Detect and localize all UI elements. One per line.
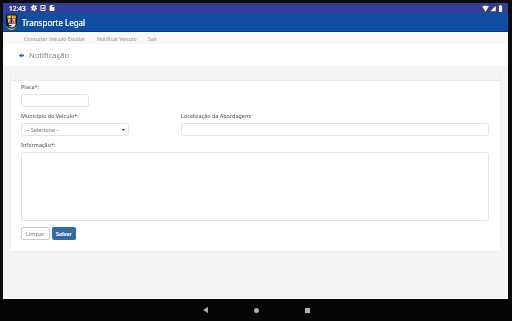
button[interactable]: Home <box>245 299 267 321</box>
staticText: Salvar <box>56 230 72 238</box>
button[interactable] <box>21 94 89 107</box>
staticText: Município do Veículo*: <box>21 112 79 119</box>
button[interactable]: Back <box>194 299 216 321</box>
button[interactable]: Sair <box>148 32 158 44</box>
button[interactable]: Recents <box>296 299 318 321</box>
staticText: Sair <box>148 35 158 42</box>
staticText: Notificar Veículo <box>97 35 137 42</box>
button[interactable]: Notificar Veículo <box>97 32 137 44</box>
staticText: -- Selecione -- <box>26 126 60 133</box>
button[interactable]: Salvar <box>52 227 76 240</box>
button[interactable]: Limpar <box>21 227 50 240</box>
staticText: Placa*: <box>21 83 39 90</box>
staticText: Consultar Veículo Escolar <box>24 35 86 42</box>
staticText: 12:43 <box>9 4 26 13</box>
button[interactable] <box>181 123 489 136</box>
staticText: Notificação <box>29 50 70 60</box>
button[interactable]: Consultar Veículo Escolar <box>24 32 86 44</box>
staticText: Transporte Legal <box>22 17 86 28</box>
button[interactable]: -- Selecione -- <box>21 123 129 136</box>
button[interactable]: Back <box>16 50 26 60</box>
staticText: Localização da Abordagem: <box>181 112 252 119</box>
staticText: Limpar <box>26 230 45 238</box>
staticText: Informação*: <box>21 141 56 148</box>
button[interactable] <box>21 152 489 221</box>
